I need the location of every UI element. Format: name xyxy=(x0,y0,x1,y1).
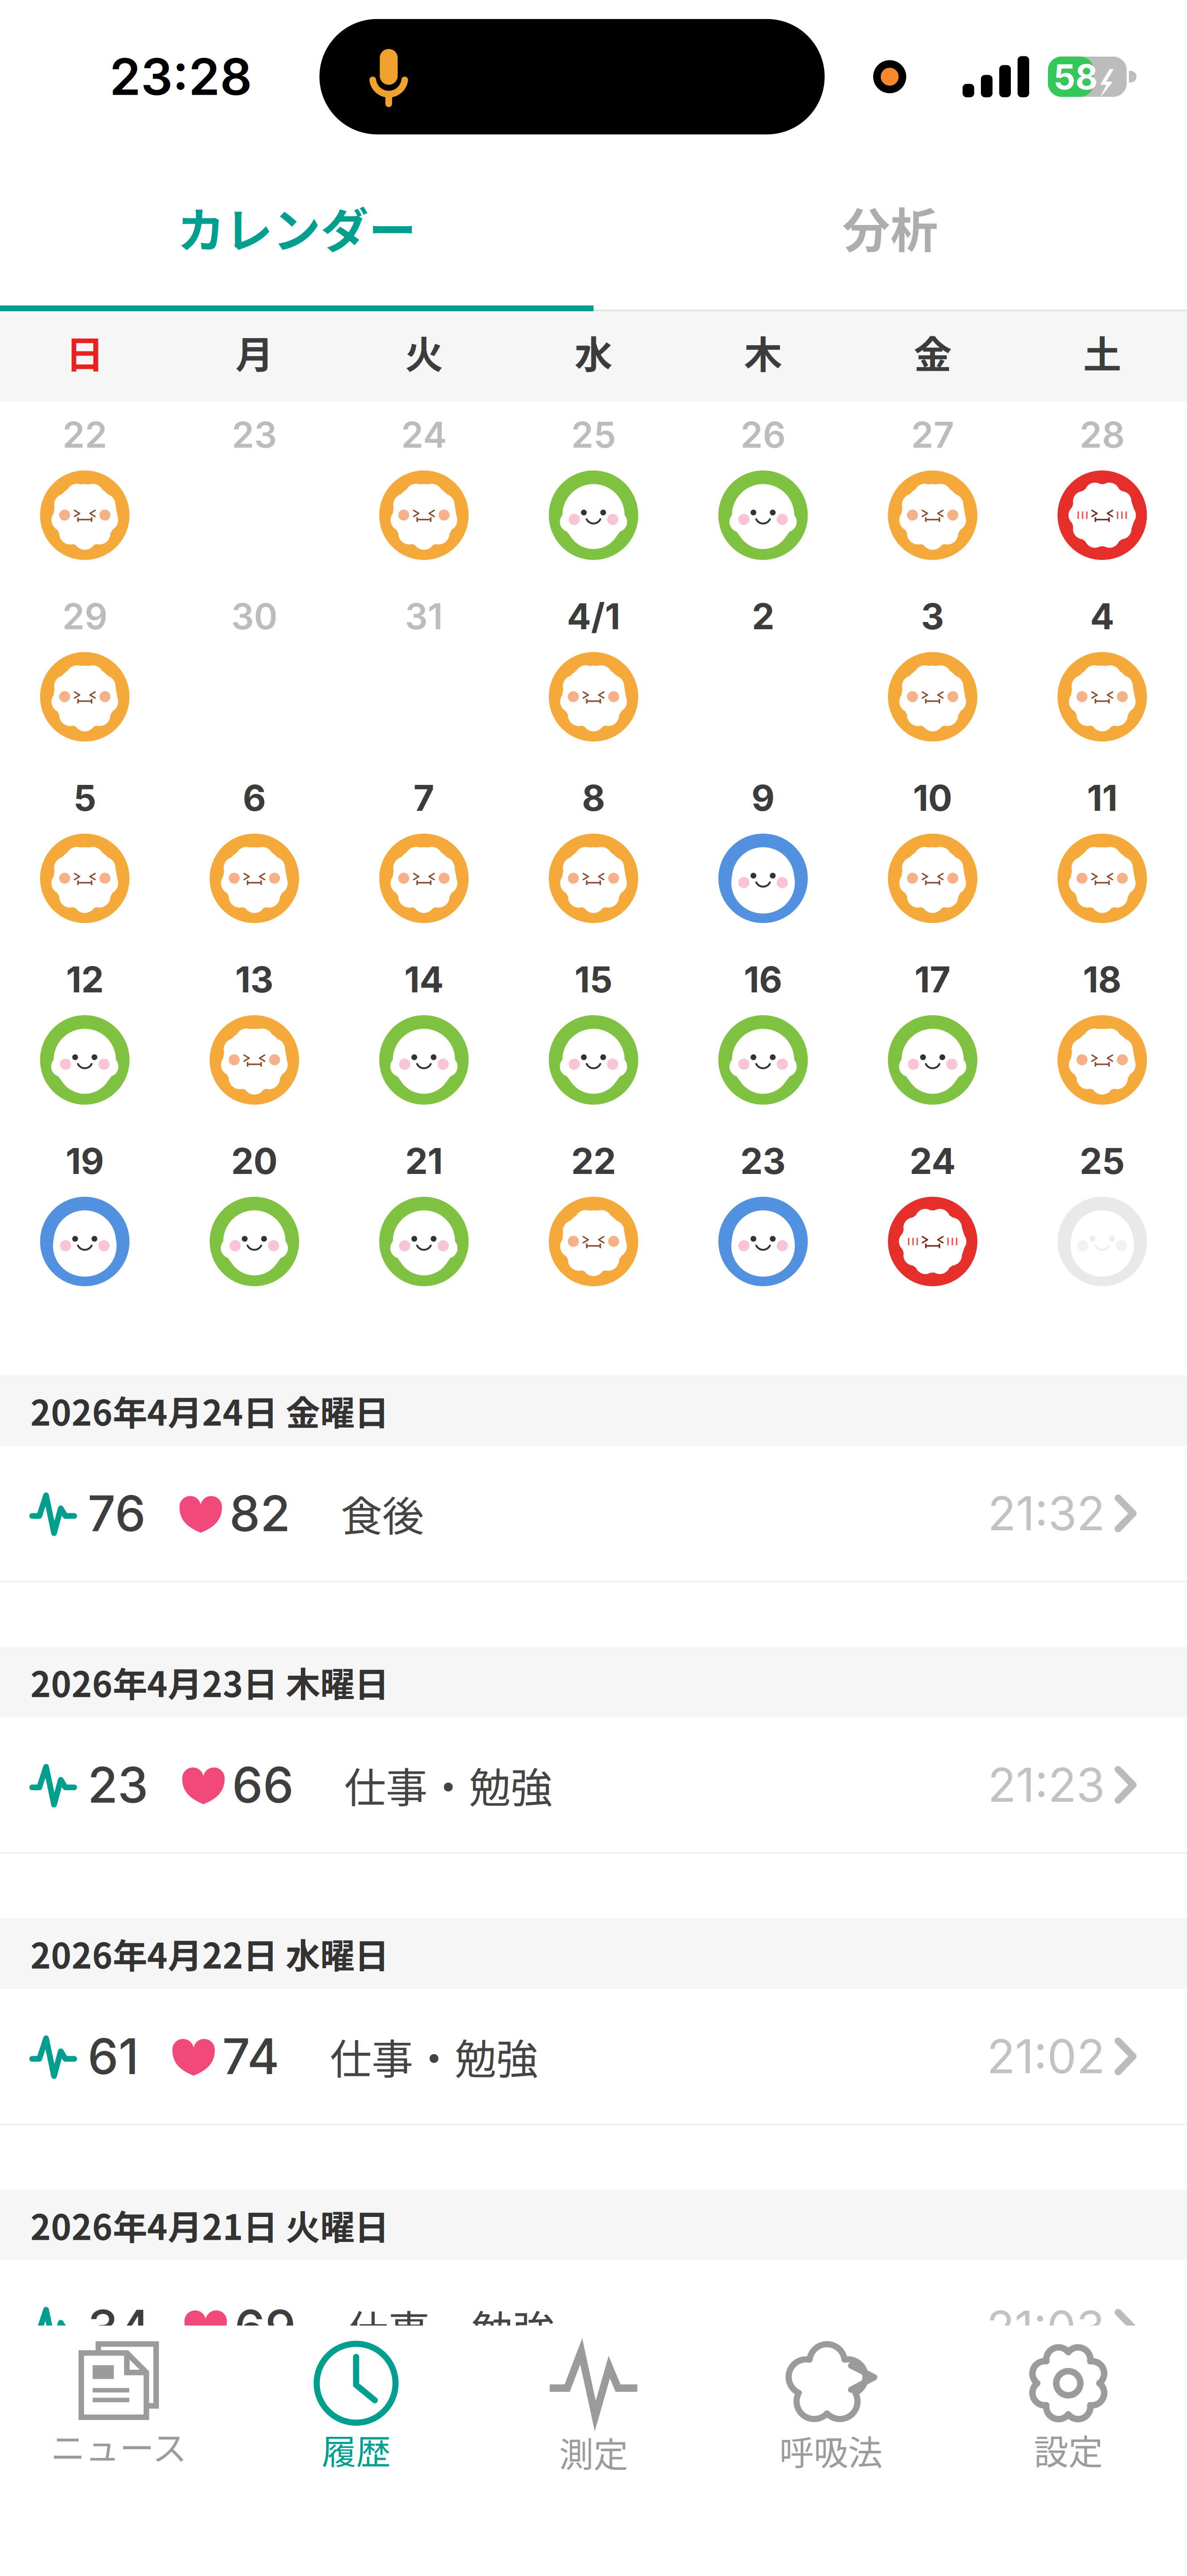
staticText: 61 xyxy=(88,2027,139,2086)
staticText: 12 xyxy=(66,958,104,1001)
staticText: 5 xyxy=(73,776,96,819)
staticText: 28 xyxy=(1080,413,1125,456)
button[interactable]: 76 xyxy=(0,1446,1187,1582)
button[interactable]: 22 xyxy=(0,402,170,583)
button[interactable]: 27 xyxy=(848,402,1017,583)
button[interactable]: 設定 xyxy=(950,2326,1187,2576)
staticText: 9 xyxy=(751,776,775,819)
staticText: 10 xyxy=(913,776,952,819)
button[interactable]: 呼吸法 xyxy=(712,2326,950,2576)
button[interactable]: 7 xyxy=(339,765,509,946)
staticText: 2026年4月22日 水曜日 xyxy=(30,1928,389,1979)
staticText: 22 xyxy=(571,1139,616,1183)
staticText: 測定 xyxy=(559,2427,628,2477)
staticText: 23 xyxy=(740,1139,786,1183)
button[interactable]: 23 xyxy=(678,1128,848,1309)
staticText: 14 xyxy=(404,958,444,1001)
staticText: 7 xyxy=(413,776,434,819)
button[interactable]: 25 xyxy=(509,402,678,583)
button[interactable]: 20 xyxy=(170,1128,339,1309)
staticText: 仕事・勉強 xyxy=(330,2026,538,2087)
button[interactable]: 18 xyxy=(1017,946,1187,1128)
staticText: 25 xyxy=(1080,1139,1125,1183)
staticText: 18 xyxy=(1083,958,1121,1001)
staticText: 4/1 xyxy=(567,595,620,638)
button[interactable]: 25 xyxy=(1017,1128,1187,1309)
staticText: 16 xyxy=(744,958,782,1001)
staticText: 21:23 xyxy=(988,1757,1105,1813)
staticText: 6 xyxy=(243,776,266,819)
staticText: 8 xyxy=(582,776,605,819)
button[interactable]: 31 xyxy=(339,583,509,765)
button[interactable]: 24 xyxy=(848,1128,1017,1309)
button[interactable]: 17 xyxy=(848,946,1017,1128)
button[interactable]: 測定 xyxy=(475,2326,712,2576)
staticText: 66 xyxy=(232,1755,294,1814)
button[interactable]: 6 xyxy=(170,765,339,946)
staticText: 23:28 xyxy=(110,46,252,107)
button[interactable]: 13 xyxy=(170,946,339,1128)
button[interactable]: 5 xyxy=(0,765,170,946)
staticText: 木 xyxy=(744,324,782,380)
staticText: 21:03 xyxy=(986,2300,1105,2356)
staticText: 11 xyxy=(1087,776,1117,819)
staticText: 20 xyxy=(231,1139,278,1183)
staticText: 17 xyxy=(915,958,951,1001)
button[interactable]: 22 xyxy=(509,1128,678,1309)
button[interactable]: 2 xyxy=(678,583,848,765)
staticText: 月 xyxy=(235,324,273,380)
button[interactable]: 9 xyxy=(678,765,848,946)
button[interactable]: 12 xyxy=(0,946,170,1128)
button[interactable]: 11 xyxy=(1017,765,1187,946)
staticText: 15 xyxy=(574,958,613,1001)
staticText: 26 xyxy=(741,413,786,456)
button[interactable]: カレンダー xyxy=(0,153,593,305)
staticText: 22 xyxy=(62,413,107,456)
staticText: 69 xyxy=(234,2298,296,2357)
staticText: 2026年4月23日 木曜日 xyxy=(30,1657,389,1707)
staticText: 2 xyxy=(752,595,774,638)
button[interactable]: 34 xyxy=(0,2260,1187,2397)
staticText: 仕事・勉強 xyxy=(344,1755,552,1815)
staticText: 水 xyxy=(574,324,613,380)
staticText: カレンダー xyxy=(177,193,416,262)
button[interactable]: 16 xyxy=(678,946,848,1128)
staticText: 金 xyxy=(914,324,952,380)
button[interactable]: 30 xyxy=(170,583,339,765)
staticText: 4 xyxy=(1090,595,1114,638)
button[interactable]: 19 xyxy=(0,1128,170,1309)
button[interactable]: 15 xyxy=(509,946,678,1128)
button[interactable]: 21 xyxy=(339,1128,509,1309)
button[interactable]: 3 xyxy=(848,583,1017,765)
button[interactable]: 10 xyxy=(848,765,1017,946)
staticText: 履歴 xyxy=(322,2424,391,2474)
button[interactable]: 23 xyxy=(170,402,339,583)
staticText: 82 xyxy=(229,1484,290,1543)
staticText: 2026年4月24日 金曜日 xyxy=(30,1385,389,1436)
button[interactable]: 14 xyxy=(339,946,509,1128)
button[interactable]: 28 xyxy=(1017,402,1187,583)
staticText: 34 xyxy=(88,2298,151,2357)
button[interactable]: ニュース xyxy=(0,2326,237,2576)
button[interactable]: 26 xyxy=(678,402,848,583)
staticText: 19 xyxy=(66,1139,104,1183)
staticText: 3 xyxy=(921,595,944,638)
button[interactable]: 29 xyxy=(0,583,170,765)
button[interactable]: 8 xyxy=(509,765,678,946)
staticText: 仕事・勉強 xyxy=(346,2298,554,2358)
staticText: 設定 xyxy=(1034,2424,1103,2474)
button[interactable]: 24 xyxy=(339,402,509,583)
staticText: 2026年4月21日 火曜日 xyxy=(30,2200,389,2250)
button[interactable]: 4/1 xyxy=(509,583,678,765)
staticText: 火 xyxy=(405,324,443,380)
staticText: 分析 xyxy=(842,193,938,262)
button[interactable]: 61 xyxy=(0,1989,1187,2125)
button[interactable]: 分析 xyxy=(593,153,1187,305)
button[interactable]: 4 xyxy=(1017,583,1187,765)
staticText: 23 xyxy=(232,413,277,456)
button[interactable]: 23 xyxy=(0,1717,1187,1854)
staticText: ニュース xyxy=(51,2421,187,2471)
staticText: 呼吸法 xyxy=(779,2425,883,2475)
staticText: 21:02 xyxy=(987,2028,1105,2084)
button[interactable]: 履歴 xyxy=(237,2326,475,2576)
